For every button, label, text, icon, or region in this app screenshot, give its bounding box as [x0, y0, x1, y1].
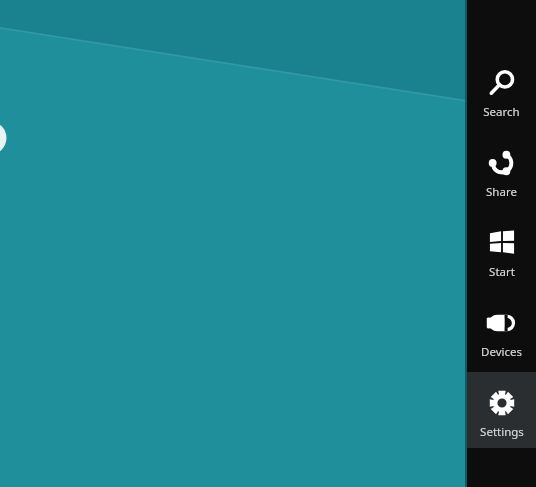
button[interactable]: Devices: [467, 292, 536, 368]
staticText: Devices: [481, 344, 522, 360]
button[interactable]: Start: [467, 212, 536, 288]
button[interactable]: Share: [467, 132, 536, 208]
button[interactable]: Search: [467, 52, 536, 128]
staticText: Search: [483, 104, 520, 120]
button[interactable]: Settings: [467, 372, 536, 448]
staticText: Share: [486, 184, 517, 200]
staticText: Settings: [480, 424, 524, 440]
staticText: Start: [489, 264, 515, 280]
